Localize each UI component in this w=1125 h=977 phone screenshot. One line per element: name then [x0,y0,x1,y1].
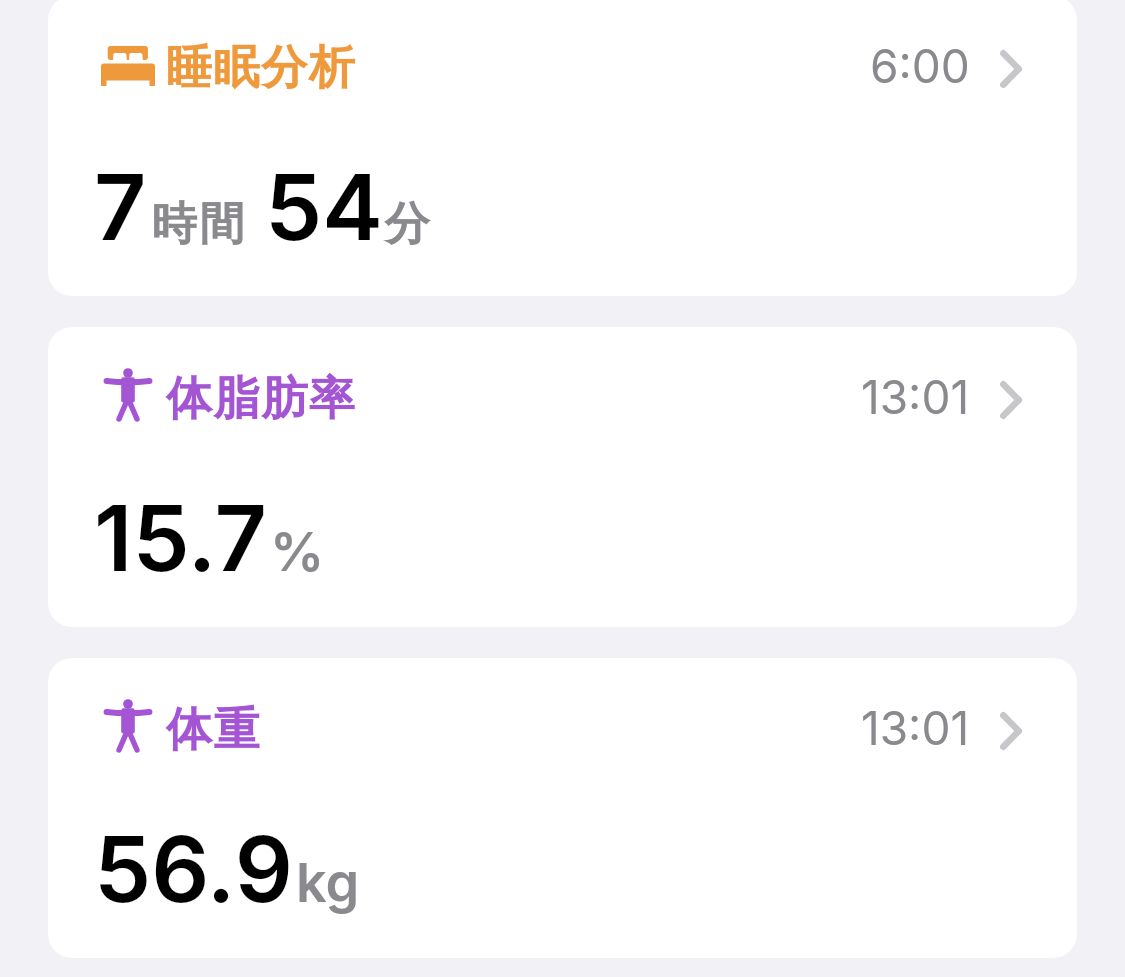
staticText: 13:01 [861,369,970,425]
other: Open details [1000,712,1022,750]
button[interactable]: 体重 [48,658,1077,958]
staticText: 54 [265,152,383,262]
staticText: 睡眠分析 [166,39,357,97]
staticText: kg [296,850,360,915]
staticText: 分 [383,196,431,253]
staticText: 体脂肪率 [166,370,357,428]
staticText: 15.7 [94,483,267,593]
staticText: 6:00 [870,38,970,94]
staticText: 13:01 [861,700,970,756]
staticText: 体重 [166,701,262,759]
other: Open details [1000,381,1022,419]
other: Open details [1000,50,1022,88]
staticText: 56.9 [94,814,293,924]
staticText: 時間 [150,196,246,253]
staticText: % [270,519,325,584]
staticText: 7 [94,152,147,262]
button[interactable]: 体脂肪率 [48,327,1077,627]
button[interactable]: 睡眠分析 [48,0,1077,296]
